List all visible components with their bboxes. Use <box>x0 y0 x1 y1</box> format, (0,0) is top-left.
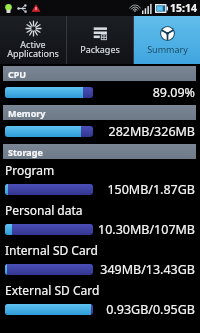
staticText: 349MB/13.43GB <box>100 261 195 278</box>
staticText: Program <box>5 162 55 178</box>
staticText: 0.93GB/0.95GB <box>106 301 195 318</box>
staticText: 10.30MB/107MB <box>98 221 195 238</box>
staticText: CPU <box>8 68 27 80</box>
staticText: Storage <box>8 146 43 158</box>
staticText: Internal SD Card <box>5 242 98 258</box>
button[interactable]: Active Applications <box>0 16 66 64</box>
staticText: 89.09% <box>152 84 195 101</box>
button[interactable]: Summary <box>134 16 200 64</box>
staticText: Packages <box>80 43 120 55</box>
staticText: Personal data <box>5 202 83 218</box>
staticText: 15:14 <box>170 1 197 15</box>
staticText: Active Applications <box>7 38 59 60</box>
staticText: 282MB/326MB <box>108 123 195 140</box>
staticText: Memory <box>8 107 46 119</box>
staticText: 150MB/1.87GB <box>107 181 195 198</box>
button[interactable]: Packages <box>67 16 133 64</box>
staticText: Summary <box>147 43 188 55</box>
staticText: External SD Card <box>5 282 100 298</box>
